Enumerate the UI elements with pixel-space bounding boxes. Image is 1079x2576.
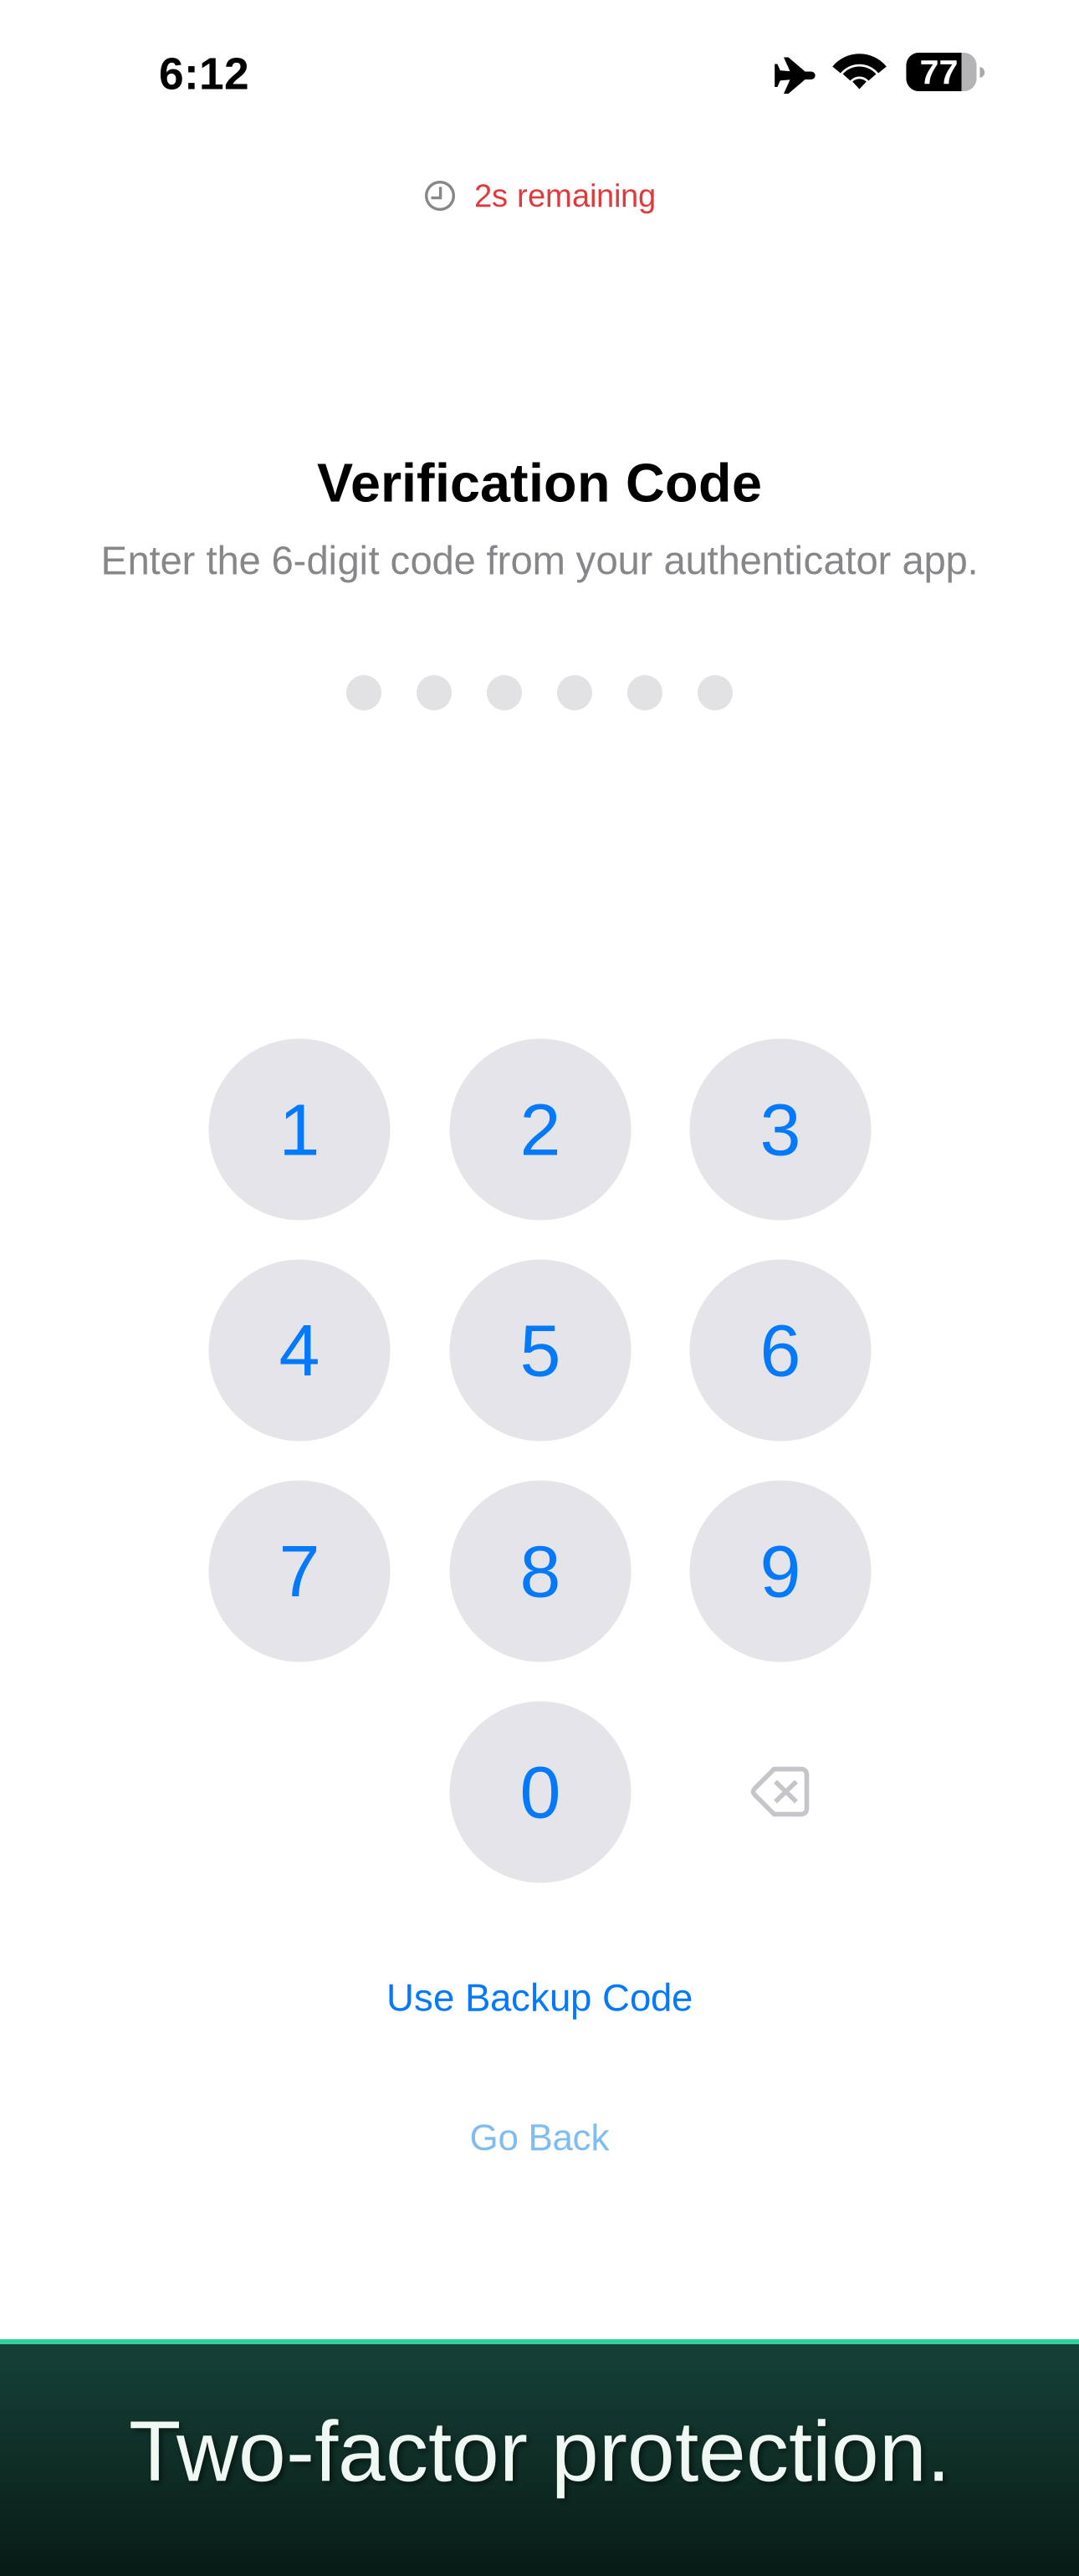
staticText: 1 — [279, 1088, 320, 1171]
staticText: 3 — [760, 1088, 801, 1171]
button[interactable]: Use Backup Code — [347, 1961, 732, 2035]
button[interactable]: Delete — [690, 1701, 871, 1883]
staticText: 4 — [279, 1309, 320, 1391]
staticText: Two-factor protection. — [129, 2404, 950, 2499]
staticText: Use Backup Code — [386, 1977, 693, 2019]
button[interactable]: 7 — [209, 1480, 390, 1662]
staticText: 8 — [520, 1530, 561, 1612]
staticText: 0 — [520, 1751, 561, 1833]
button[interactable]: 4 — [209, 1260, 390, 1441]
staticText: 9 — [760, 1530, 801, 1612]
staticText: Go Back — [470, 2117, 609, 2158]
button[interactable]: 6 — [690, 1260, 871, 1441]
staticText: 6 — [760, 1309, 801, 1391]
staticText: 7 — [279, 1530, 320, 1612]
button[interactable]: 1 — [209, 1039, 390, 1220]
button[interactable]: 3 — [690, 1039, 871, 1220]
button[interactable]: 8 — [450, 1480, 631, 1662]
staticText: 5 — [520, 1309, 561, 1391]
button[interactable]: 9 — [690, 1480, 871, 1662]
staticText: 77 — [920, 53, 958, 91]
staticText: Enter the 6-digit code from your authent… — [101, 538, 978, 583]
button[interactable]: 5 — [450, 1260, 631, 1441]
staticText: 2s remaining — [474, 178, 656, 214]
button[interactable]: Go Back — [431, 2101, 648, 2174]
button[interactable]: 0 — [450, 1701, 631, 1883]
staticText: 6:12 — [159, 49, 249, 99]
staticText: 2 — [520, 1088, 561, 1171]
staticText: Verification Code — [317, 453, 762, 513]
button[interactable]: 2 — [450, 1039, 631, 1220]
